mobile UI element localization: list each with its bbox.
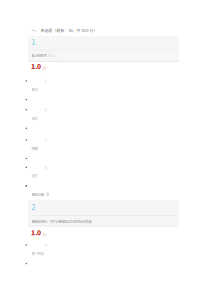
staticText: 复习的任务（ ）。 xyxy=(31,53,57,58)
staticText: A、 xyxy=(44,79,49,83)
staticText: 一、 单选题（题数：50，共 50.0 分） xyxy=(31,28,97,33)
button[interactable]: D、 xyxy=(0,0,210,297)
staticText: A、 xyxy=(44,243,49,247)
staticText: 明确 xyxy=(31,146,37,151)
staticText: 1.0 xyxy=(31,228,41,237)
staticText: 分 xyxy=(42,65,46,71)
staticText: 我的答案：D xyxy=(31,192,48,197)
button[interactable]: B、 xyxy=(0,0,210,297)
button[interactable]: A、 xyxy=(0,0,210,297)
staticText: 2 xyxy=(31,201,35,212)
staticText: D、 xyxy=(44,165,49,170)
button[interactable]: C、 xyxy=(0,0,210,297)
staticText: 第一阶段 xyxy=(31,251,43,256)
staticText: 1.0 xyxy=(31,61,41,71)
staticText: C、 xyxy=(44,137,49,142)
staticText: 记忆 xyxy=(31,173,37,178)
staticText: 语文 xyxy=(31,116,37,121)
staticText: B、 xyxy=(44,107,49,112)
staticText: 1 xyxy=(31,36,35,47)
button[interactable]: A、 xyxy=(0,0,210,297)
staticText: 分 xyxy=(42,232,46,237)
staticText: 要提高效率，为什么要缩短记忆任务区间长度 xyxy=(31,219,91,224)
staticText: 数学 xyxy=(31,87,37,92)
